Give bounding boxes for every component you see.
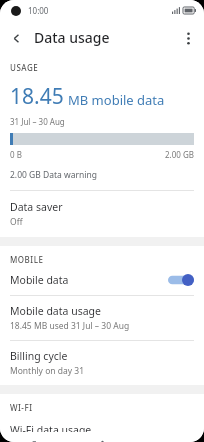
staticText: 10:00: [28, 5, 49, 16]
staticText: Billing cycle: [10, 349, 68, 363]
staticText: Data usage: [34, 28, 110, 47]
staticText: 18.45 MB used 31 Jul – 30 Aug: [10, 320, 130, 332]
button[interactable]: More options: [172, 22, 204, 54]
button[interactable]: Billing cycle: [0, 341, 204, 385]
staticText: 2.00 GB Data warning: [10, 169, 97, 181]
staticText: 31 Jul – 30 Aug: [10, 116, 65, 127]
staticText: Off: [10, 216, 23, 228]
staticText: 2.00 GB: [165, 149, 194, 160]
staticText: Wi-Fi data usage: [10, 423, 92, 432]
staticText: Monthly on day 31: [10, 365, 85, 377]
button[interactable]: Mobile data: [0, 265, 204, 295]
staticText: Mobile data: [10, 273, 69, 287]
staticText: MB mobile data: [68, 91, 165, 109]
staticText: Mobile data usage: [10, 304, 101, 318]
staticText: Data saver: [10, 200, 63, 214]
staticText: 18.45: [10, 82, 64, 111]
button[interactable]: Data saver: [0, 191, 204, 237]
button[interactable]: Back: [0, 22, 32, 54]
staticText: 0 B: [10, 149, 22, 160]
staticText: WI-FI: [10, 402, 33, 413]
staticText: MOBILE: [10, 254, 44, 265]
button[interactable]: Mobile data usage: [0, 296, 204, 340]
button[interactable]: Wi-Fi data usage: [0, 413, 204, 442]
staticText: USAGE: [10, 62, 39, 73]
